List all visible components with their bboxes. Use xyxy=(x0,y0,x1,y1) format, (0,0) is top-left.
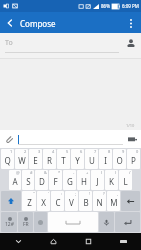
staticText: A xyxy=(12,176,18,187)
staticText: 0 xyxy=(136,149,139,154)
button[interactable]: - xyxy=(63,170,76,190)
button[interactable]: Pick contact xyxy=(121,33,141,52)
button[interactable]: To xyxy=(0,33,141,52)
staticText: O xyxy=(116,155,123,166)
staticText: N xyxy=(96,197,103,208)
button[interactable]: 4 xyxy=(43,149,56,169)
staticText: ; xyxy=(75,191,77,196)
staticText: 3 xyxy=(38,149,41,154)
button[interactable]: 3 xyxy=(29,149,42,169)
staticText: " xyxy=(33,191,35,196)
button[interactable]: Back xyxy=(0,13,20,33)
staticText: Q xyxy=(4,155,11,166)
staticText: 5 xyxy=(66,149,69,154)
staticText: - xyxy=(73,170,75,175)
staticText: L xyxy=(123,176,128,187)
button[interactable]: Shift xyxy=(1,191,21,211)
button[interactable]: Symbols xyxy=(1,212,17,232)
button[interactable]: Voice input xyxy=(99,212,114,232)
button[interactable]: & xyxy=(35,170,48,190)
staticText: Y xyxy=(75,155,80,166)
staticText: R xyxy=(47,155,52,166)
staticText: K xyxy=(109,176,114,187)
button[interactable]: Recent apps xyxy=(71,233,106,250)
staticText: 6 xyxy=(80,149,83,154)
button[interactable]: Emoji xyxy=(34,212,47,232)
button[interactable]: Hide keyboard xyxy=(0,233,36,250)
staticText: 9 xyxy=(122,149,125,154)
staticText: 1 xyxy=(10,149,13,154)
staticText: ! xyxy=(89,191,91,196)
button[interactable]: ( xyxy=(91,170,104,190)
staticText: / xyxy=(129,170,131,175)
staticText: G xyxy=(67,176,73,187)
staticText: Compose xyxy=(20,18,56,29)
staticText: ( xyxy=(101,170,103,175)
staticText: S xyxy=(26,176,31,187)
staticText: J xyxy=(96,176,99,187)
staticText: Z xyxy=(27,197,32,208)
button[interactable]: Backspace xyxy=(121,191,140,211)
button[interactable]: 8 xyxy=(99,149,112,169)
staticText: H xyxy=(81,176,87,187)
button[interactable] xyxy=(18,130,123,148)
staticText: @ xyxy=(16,170,20,175)
staticText: ? xyxy=(103,191,105,196)
button[interactable]: , xyxy=(107,191,120,211)
staticText: 1/10 xyxy=(126,123,135,128)
staticText: T xyxy=(61,155,66,166)
staticText: U xyxy=(89,155,95,166)
button[interactable]: Home xyxy=(36,233,71,250)
staticText: 8 xyxy=(108,149,111,154)
staticText: P xyxy=(131,155,136,166)
button[interactable]: : xyxy=(51,191,64,211)
button[interactable]: 2 xyxy=(15,149,28,169)
button[interactable]: Language xyxy=(18,212,33,232)
button[interactable]: " xyxy=(22,191,36,211)
button[interactable]: Attach xyxy=(0,130,18,148)
button[interactable]: 6 xyxy=(71,149,84,169)
staticText: # xyxy=(30,170,33,175)
staticText: D xyxy=(39,176,45,187)
staticText: 2 xyxy=(24,149,27,154)
staticText: I xyxy=(104,155,107,166)
button[interactable]: / xyxy=(119,170,132,190)
button[interactable]: ? xyxy=(93,191,106,211)
staticText: 86% xyxy=(101,3,110,9)
staticText: & xyxy=(44,170,47,175)
staticText: F xyxy=(53,176,58,187)
button[interactable]: ; xyxy=(65,191,78,211)
staticText: : xyxy=(61,191,63,196)
button[interactable]: + xyxy=(77,170,90,190)
staticText: ) xyxy=(115,170,117,175)
staticText: C xyxy=(55,197,61,208)
staticText: W xyxy=(18,155,26,166)
staticText: 4 xyxy=(52,149,55,154)
button[interactable]: ) xyxy=(105,170,118,190)
button[interactable]: More options xyxy=(121,13,141,33)
button[interactable]: ' xyxy=(37,191,50,211)
staticText: M xyxy=(110,197,118,208)
button[interactable]: 0 xyxy=(127,149,140,169)
button[interactable]: 7 xyxy=(85,149,98,169)
staticText: 7 xyxy=(94,149,97,154)
staticText: V xyxy=(69,197,74,208)
button[interactable]: Send xyxy=(123,130,141,148)
button[interactable]: 1 xyxy=(1,149,14,169)
staticText: E xyxy=(33,155,38,166)
staticText: + xyxy=(86,170,89,175)
staticText: ' xyxy=(48,191,49,196)
staticText: FR xyxy=(23,221,29,228)
button[interactable]: 5 xyxy=(57,149,70,169)
button[interactable]: 9 xyxy=(113,149,126,169)
button[interactable]: Space xyxy=(48,212,98,232)
button[interactable]: * xyxy=(49,170,62,190)
button[interactable]: Enter xyxy=(115,212,140,232)
button[interactable]: Switch keyboard xyxy=(106,233,141,250)
button[interactable]: @ xyxy=(9,170,21,190)
staticText: B xyxy=(83,197,89,208)
staticText: To xyxy=(5,38,13,48)
staticText: * xyxy=(58,170,61,175)
button[interactable]: ! xyxy=(79,191,92,211)
button[interactable]: # xyxy=(22,170,34,190)
